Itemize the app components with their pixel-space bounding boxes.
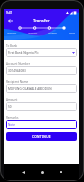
staticText: 50 <box>8 105 75 109</box>
staticText: First Bank Nigeria Plc <box>8 51 72 55</box>
button[interactable]: 3014944083 <box>6 66 77 75</box>
button[interactable]: 50 <box>6 102 77 111</box>
staticText: Account Number <box>6 62 30 66</box>
button[interactable]: Back <box>4 15 16 27</box>
staticText: Transfer <box>33 18 50 24</box>
button[interactable]: Recent apps <box>56 167 66 177</box>
staticText: Note <box>8 123 75 127</box>
staticText: Recipient Name <box>6 80 29 84</box>
staticText: Done <box>69 31 76 34</box>
button[interactable]: Note <box>6 120 77 129</box>
staticText: Remarks <box>6 116 19 120</box>
button[interactable]: First Bank Nigeria Plc <box>6 48 77 57</box>
staticText: Amount <box>6 98 18 102</box>
staticText: 3014944083 <box>8 69 75 73</box>
staticText: Confirm <box>48 31 58 34</box>
button[interactable]: Back <box>18 167 28 177</box>
staticText: 9:41 <box>6 11 13 15</box>
staticText: Account <box>7 31 17 34</box>
button[interactable]: MOFUNG OLAWALE ABIODUN <box>6 84 77 93</box>
staticText: Amount <box>28 31 38 34</box>
button[interactable]: CONTINUE <box>6 132 77 141</box>
staticText: MOFUNG OLAWALE ABIODUN <box>8 87 75 91</box>
button[interactable]: Home <box>37 167 47 177</box>
staticText: CONTINUE <box>32 135 51 139</box>
staticText: To Bank <box>6 44 18 48</box>
